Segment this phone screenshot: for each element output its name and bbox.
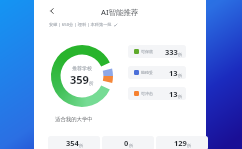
staticText: 所 <box>187 143 191 148</box>
staticText: 推荐学校 <box>72 65 92 71</box>
staticText: 所 <box>129 143 133 148</box>
button[interactable]: 能稳妥 <box>128 66 186 79</box>
staticText: 333 <box>165 47 178 57</box>
button[interactable]: 0 <box>102 136 154 149</box>
staticText: AI智能推荐 <box>101 7 139 17</box>
staticText: 354 <box>66 138 79 148</box>
staticText: 所 <box>178 52 182 57</box>
button[interactable]: 可保底 <box>128 45 186 58</box>
staticText: 适合我的大学中 <box>55 116 93 123</box>
staticText: 13 <box>169 89 178 99</box>
staticText: 能稳妥 <box>141 70 153 75</box>
button[interactable]: 354 <box>48 136 100 149</box>
staticText: 可冲击 <box>141 91 153 96</box>
staticText: 所 <box>89 81 94 87</box>
button[interactable]: 129 <box>156 136 208 149</box>
button[interactable]: Back <box>46 5 58 17</box>
staticText: 所 <box>178 73 182 78</box>
staticText: 0 <box>124 138 129 148</box>
button[interactable]: 可冲击 <box>128 87 186 100</box>
staticText: 129 <box>174 138 187 148</box>
staticText: 13 <box>169 68 178 78</box>
staticText: 可保底 <box>141 49 153 54</box>
staticText: 359 <box>70 72 89 87</box>
staticText: 所 <box>178 94 182 99</box>
staticText: 安徽 | 650分 | 理科 | 本科第一批 <box>49 22 112 28</box>
staticText: 所 <box>79 143 83 148</box>
